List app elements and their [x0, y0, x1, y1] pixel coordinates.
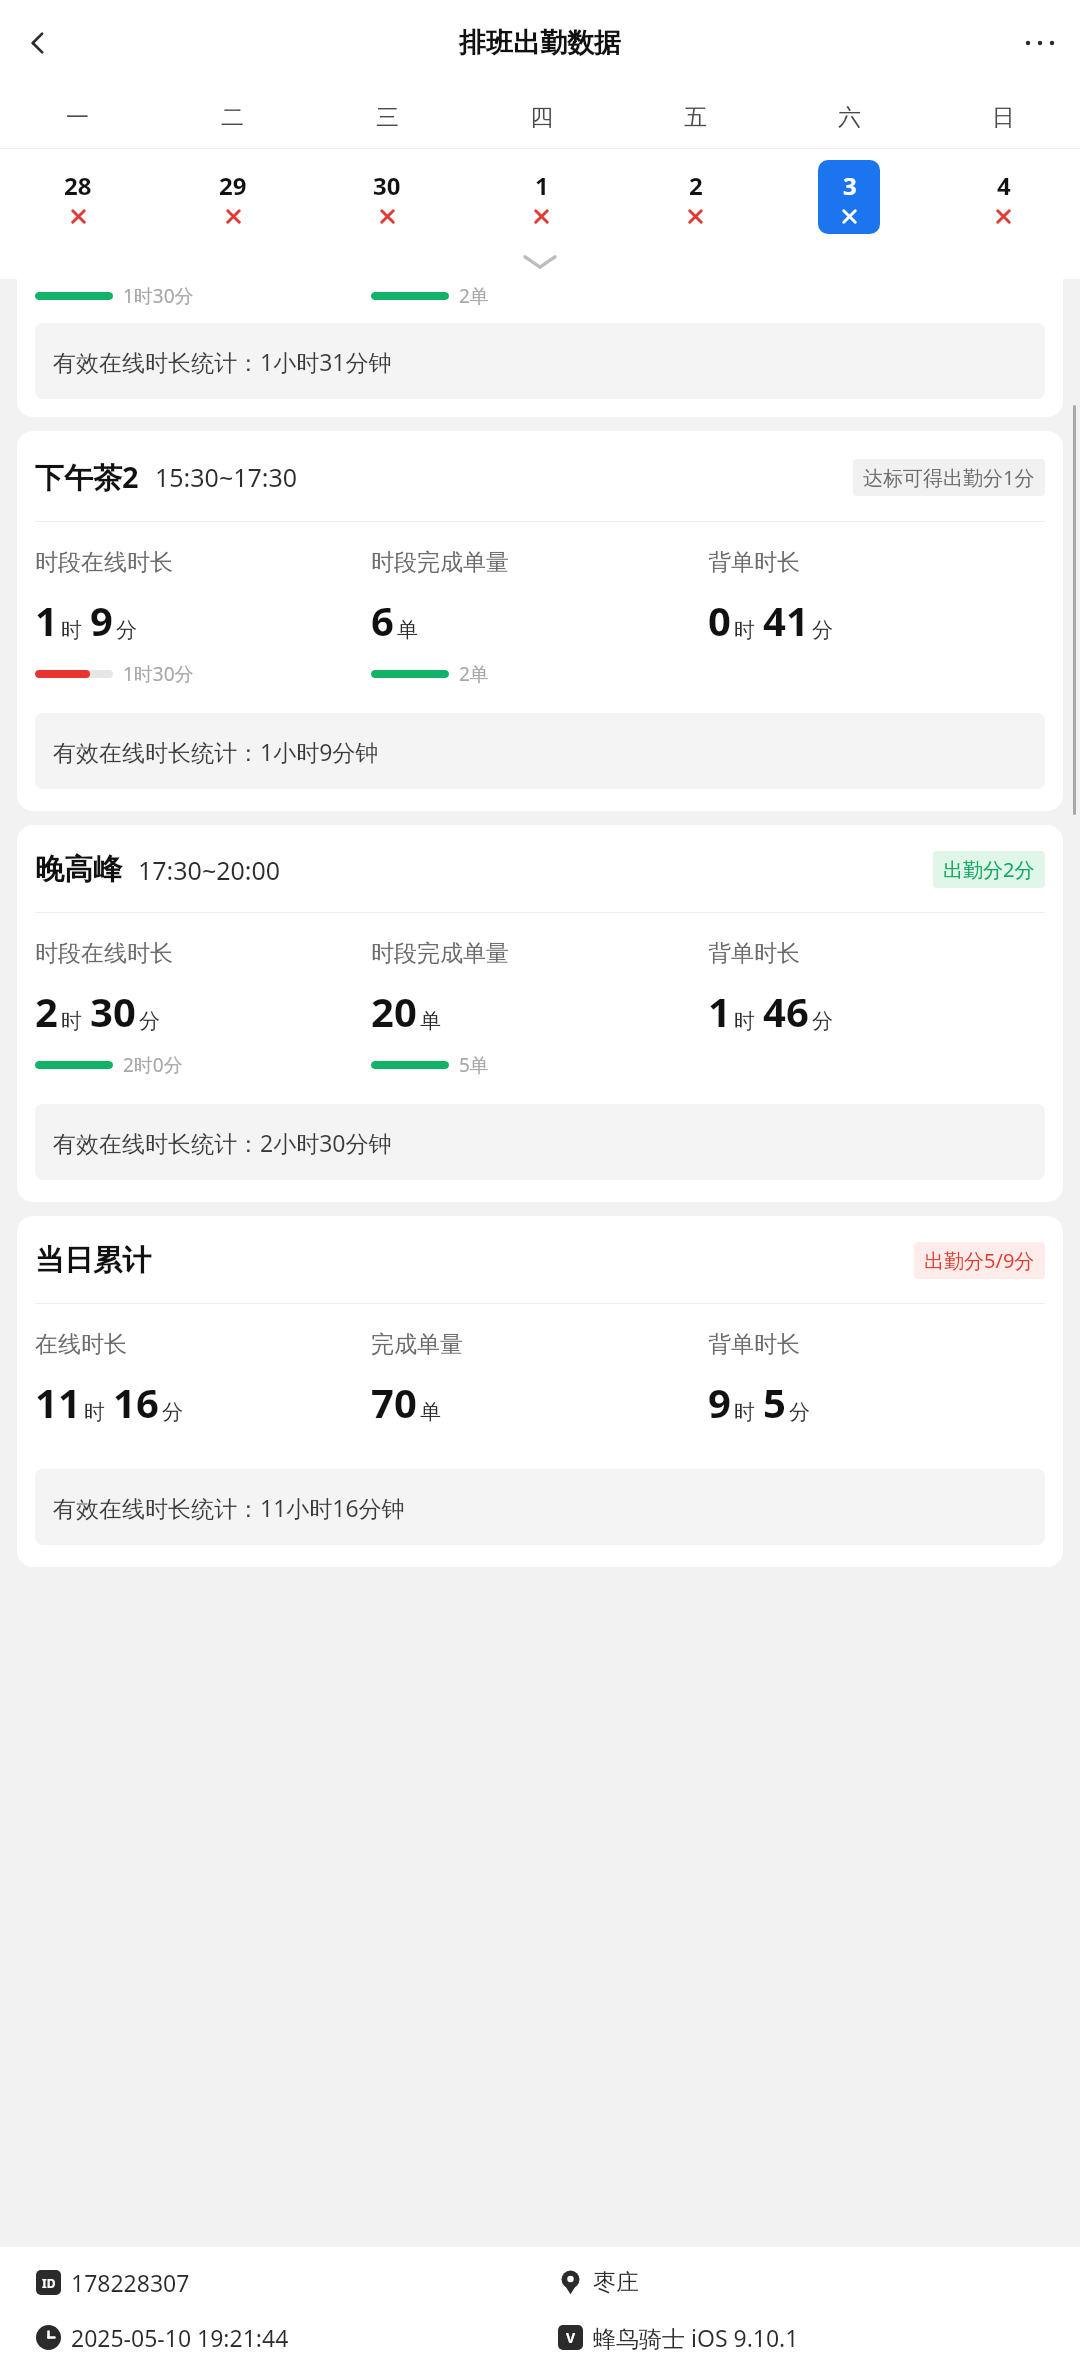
staticText: 20 [371, 984, 417, 1038]
staticText: 17:30~20:00 [138, 853, 281, 887]
staticText: 时 [61, 1008, 82, 1034]
staticText: ID [42, 2275, 56, 2291]
staticText: 下午茶2 [35, 457, 139, 497]
staticText: 1 [35, 593, 58, 647]
staticText: 时段完成单量 [371, 548, 509, 577]
button[interactable]: 29 [202, 160, 264, 234]
button[interactable]: 1 [510, 160, 572, 234]
staticText: V [566, 2328, 576, 2347]
staticText: 六 [838, 103, 861, 132]
staticText: 有效在线时长统计：1小时31分钟 [53, 346, 392, 377]
staticText: 五 [684, 103, 707, 132]
staticText: 70 [371, 1375, 417, 1429]
staticText: 16 [113, 1375, 159, 1429]
staticText: 178228307 [71, 2267, 190, 2298]
button[interactable]: Expand calendar [0, 245, 1080, 279]
staticText: 时段在线时长 [35, 939, 173, 968]
staticText: 2 [35, 984, 58, 1038]
staticText: 1时30分 [123, 283, 194, 309]
button[interactable]: 28 [47, 160, 109, 234]
staticText: 2时0分 [123, 1052, 183, 1078]
staticText: 分 [812, 617, 833, 643]
button[interactable]: 晚高峰 [17, 825, 1063, 1202]
button[interactable]: 3 [818, 160, 880, 234]
staticText: 41 [763, 593, 809, 647]
button[interactable]: 1时30分 [17, 279, 1063, 417]
button[interactable]: Back [8, 13, 68, 73]
staticText: 1 [535, 169, 549, 202]
staticText: 5单 [459, 1052, 489, 1078]
staticText: 当日累计 [35, 1242, 151, 1279]
staticText: 背单时长 [708, 548, 800, 577]
button[interactable]: 当日累计 [17, 1216, 1063, 1567]
staticText: 30 [373, 169, 401, 202]
staticText: 6 [371, 593, 394, 647]
staticText: 9 [90, 593, 113, 647]
staticText: 时 [734, 1008, 755, 1034]
staticText: 单 [420, 1399, 441, 1425]
staticText: 时 [61, 617, 82, 643]
staticText: 9 [708, 1375, 731, 1429]
staticText: 1 [708, 984, 731, 1038]
staticText: 枣庄 [593, 2268, 639, 2297]
staticText: 背单时长 [708, 1330, 800, 1359]
staticText: 分 [139, 1008, 160, 1034]
staticText: 完成单量 [371, 1330, 463, 1359]
staticText: 分 [162, 1399, 183, 1425]
staticText: 背单时长 [708, 939, 800, 968]
staticText: 1时30分 [123, 661, 194, 687]
staticText: 分 [812, 1008, 833, 1034]
staticText: 时 [734, 1399, 755, 1425]
staticText: 11 [35, 1375, 81, 1429]
staticText: 日 [992, 103, 1015, 132]
button[interactable]: 下午茶2 [17, 431, 1063, 811]
staticText: 2 [689, 169, 703, 202]
staticText: 15:30~17:30 [155, 460, 298, 494]
staticText: 出勤分5/9分 [924, 1247, 1035, 1274]
staticText: 分 [116, 617, 137, 643]
staticText: 4 [997, 169, 1011, 202]
staticText: 三 [376, 103, 399, 132]
staticText: 46 [763, 984, 809, 1038]
staticText: 有效在线时长统计：2小时30分钟 [53, 1127, 392, 1158]
staticText: 单 [420, 1008, 441, 1034]
staticText: 时段在线时长 [35, 548, 173, 577]
staticText: 分 [789, 1399, 810, 1425]
staticText: 时 [84, 1399, 105, 1425]
staticText: 0 [708, 593, 731, 647]
staticText: 30 [90, 984, 136, 1038]
staticText: 5 [763, 1375, 786, 1429]
button[interactable]: 4 [972, 160, 1034, 234]
staticText: 晚高峰 [35, 851, 122, 888]
staticText: 蜂鸟骑士 iOS 9.10.1 [593, 2322, 799, 2353]
staticText: 3 [843, 169, 857, 202]
button[interactable]: 30 [356, 160, 418, 234]
staticText: 二 [221, 103, 244, 132]
button[interactable]: More options [1010, 13, 1070, 73]
staticText: 2025-05-10 19:21:44 [71, 2322, 289, 2353]
staticText: 28 [64, 169, 92, 202]
staticText: 有效在线时长统计：11小时16分钟 [53, 1492, 405, 1523]
staticText: 时段完成单量 [371, 939, 509, 968]
staticText: 一 [66, 103, 89, 132]
staticText: 有效在线时长统计：1小时9分钟 [53, 736, 379, 767]
staticText: 2单 [459, 283, 489, 309]
button[interactable]: 2 [664, 160, 726, 234]
staticText: 排班出勤数据 [459, 26, 621, 60]
staticText: 出勤分2分 [943, 856, 1035, 883]
staticText: 29 [219, 169, 247, 202]
staticText: 在线时长 [35, 1330, 127, 1359]
staticText: 单 [397, 617, 418, 643]
staticText: 四 [530, 103, 553, 132]
staticText: 2单 [459, 661, 489, 687]
staticText: 时 [734, 617, 755, 643]
staticText: 达标可得出勤分1分 [863, 464, 1035, 491]
